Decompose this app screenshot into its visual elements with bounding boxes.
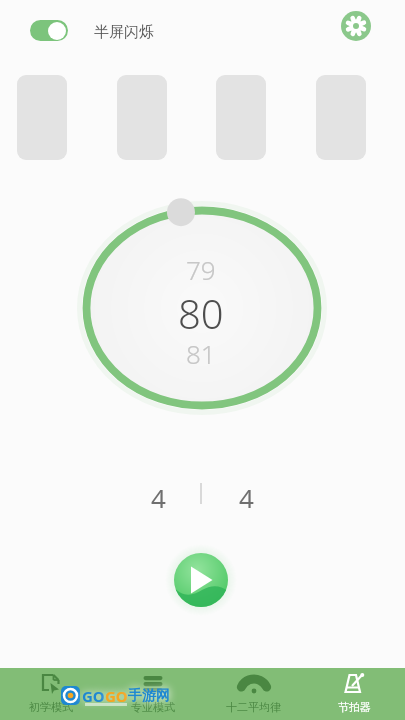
button[interactable]: 十二平均律	[203, 668, 304, 720]
staticText: GO	[82, 686, 105, 706]
staticText: 80	[178, 286, 224, 330]
button[interactable]	[341, 11, 371, 41]
button[interactable]: 专业模式	[102, 668, 203, 720]
staticText: 81	[186, 336, 216, 364]
staticText: 4	[151, 480, 166, 510]
staticText: 初学模式	[29, 700, 73, 714]
staticText: 手游网	[128, 687, 170, 705]
button[interactable]	[164, 543, 238, 617]
staticText: 4	[239, 480, 254, 510]
staticText: GO	[105, 686, 128, 706]
staticText: 半屏闪烁	[94, 23, 154, 42]
button[interactable]	[30, 20, 68, 41]
staticText: 79	[186, 252, 216, 280]
staticText: 节拍器	[338, 700, 371, 714]
button[interactable]: 初学模式	[0, 668, 102, 720]
staticText: 十二平均律	[226, 700, 281, 714]
staticText: 专业模式	[131, 700, 175, 714]
button[interactable]: 节拍器	[304, 668, 405, 720]
